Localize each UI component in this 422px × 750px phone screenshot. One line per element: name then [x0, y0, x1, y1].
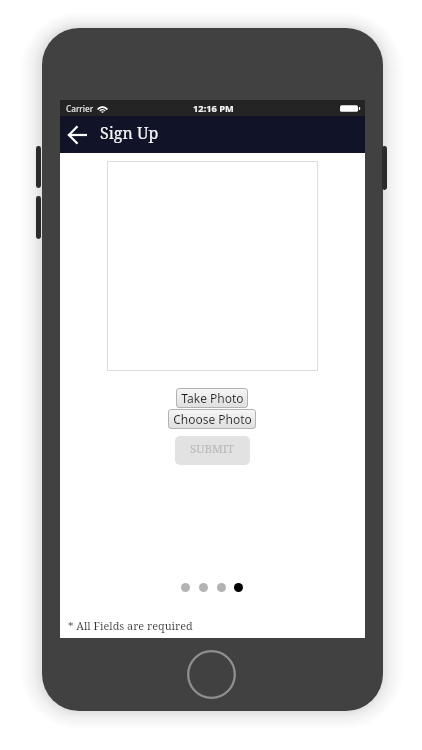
staticText: Sign Up [100, 122, 159, 144]
button[interactable]: Step 3 [217, 583, 226, 592]
button[interactable]: Step 2 [199, 583, 208, 592]
button[interactable]: Take Photo [176, 388, 248, 408]
button[interactable]: Step 4, current [234, 583, 243, 592]
button[interactable]: Photo preview [107, 161, 318, 371]
button[interactable]: Choose Photo [168, 409, 256, 429]
staticText: 12:16 PM [193, 102, 234, 115]
staticText: * All Fields are required [68, 618, 193, 633]
button[interactable]: SUBMIT [175, 436, 250, 465]
staticText: Take Photo [181, 390, 244, 406]
staticText: Carrier [66, 103, 94, 114]
button[interactable]: Back [61, 119, 93, 151]
staticText: Choose Photo [173, 411, 252, 427]
staticText: SUBMIT [190, 441, 235, 457]
button[interactable]: Step 1 [181, 583, 190, 592]
